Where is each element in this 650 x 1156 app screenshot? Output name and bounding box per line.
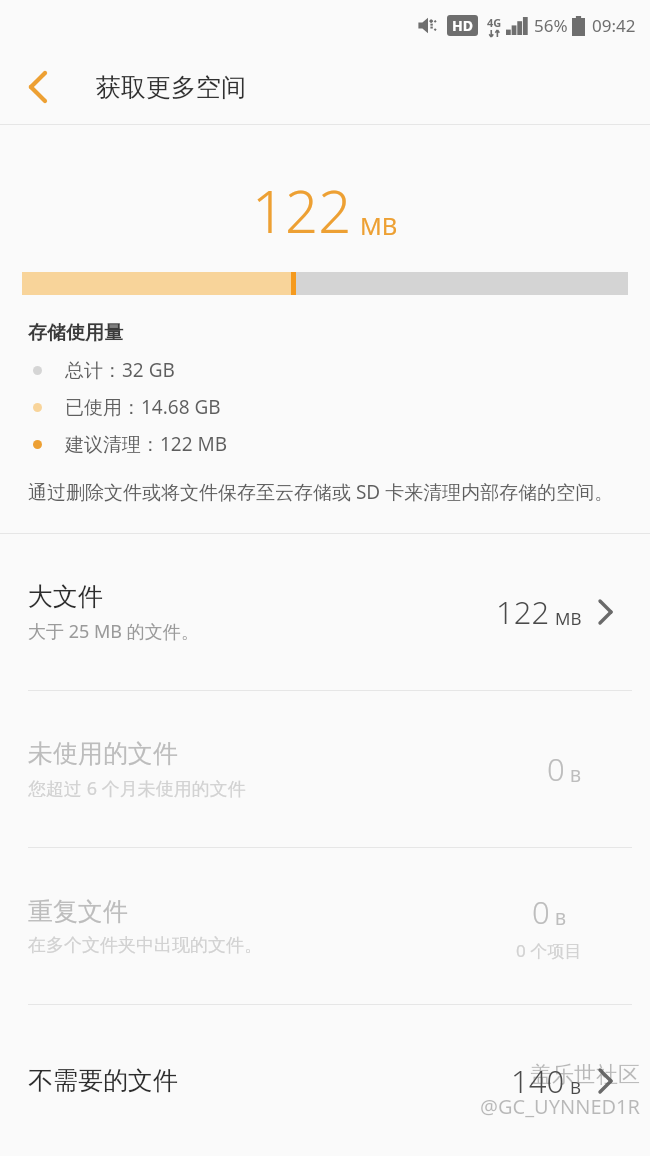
- button[interactable]: 大文件: [0, 534, 650, 690]
- staticText: 不需要的文件: [28, 1065, 178, 1096]
- staticText: 122: [496, 591, 550, 633]
- staticText: 4G: [487, 15, 502, 30]
- staticText: 存储使用量: [28, 321, 123, 345]
- staticText: 0 个项目: [516, 939, 582, 962]
- staticText: 0: [547, 748, 565, 790]
- staticText: 已使用：14.68 GB: [65, 394, 221, 420]
- staticText: 56%: [534, 14, 568, 37]
- staticText: 建议清理：122 MB: [65, 431, 228, 457]
- staticText: MB: [555, 607, 582, 630]
- staticText: 通过删除文件或将文件保存至云存储或 SD 卡来清理内部存储的空间。: [28, 479, 614, 505]
- staticText: B: [570, 1076, 582, 1099]
- staticText: MB: [360, 209, 398, 242]
- staticText: 获取更多空间: [96, 72, 246, 103]
- staticText: 总计：32 GB: [65, 357, 175, 383]
- staticText: 0: [532, 891, 550, 933]
- staticText: 大于 25 MB 的文件。: [28, 619, 199, 644]
- staticText: 盖乐世社区: [530, 1061, 640, 1089]
- staticText: 您超过 6 个月未使用的文件: [28, 776, 246, 801]
- staticText: 122: [252, 171, 352, 250]
- staticText: 大文件: [28, 581, 103, 612]
- staticText: B: [555, 907, 567, 930]
- staticText: 未使用的文件: [28, 738, 178, 769]
- staticText: @GC_UYNNED1R: [480, 1093, 640, 1120]
- button[interactable]: Back: [0, 50, 74, 124]
- staticText: HD: [452, 16, 473, 35]
- button[interactable]: 未使用的文件: [0, 691, 650, 847]
- staticText: 09:42: [592, 14, 636, 37]
- button[interactable]: 重复文件: [0, 848, 650, 1004]
- staticText: 在多个文件夹中出现的文件。: [28, 934, 262, 957]
- staticText: 140: [511, 1060, 565, 1102]
- button[interactable]: 不需要的文件: [0, 1005, 650, 1156]
- staticText: 重复文件: [28, 896, 128, 927]
- staticText: B: [570, 764, 582, 787]
